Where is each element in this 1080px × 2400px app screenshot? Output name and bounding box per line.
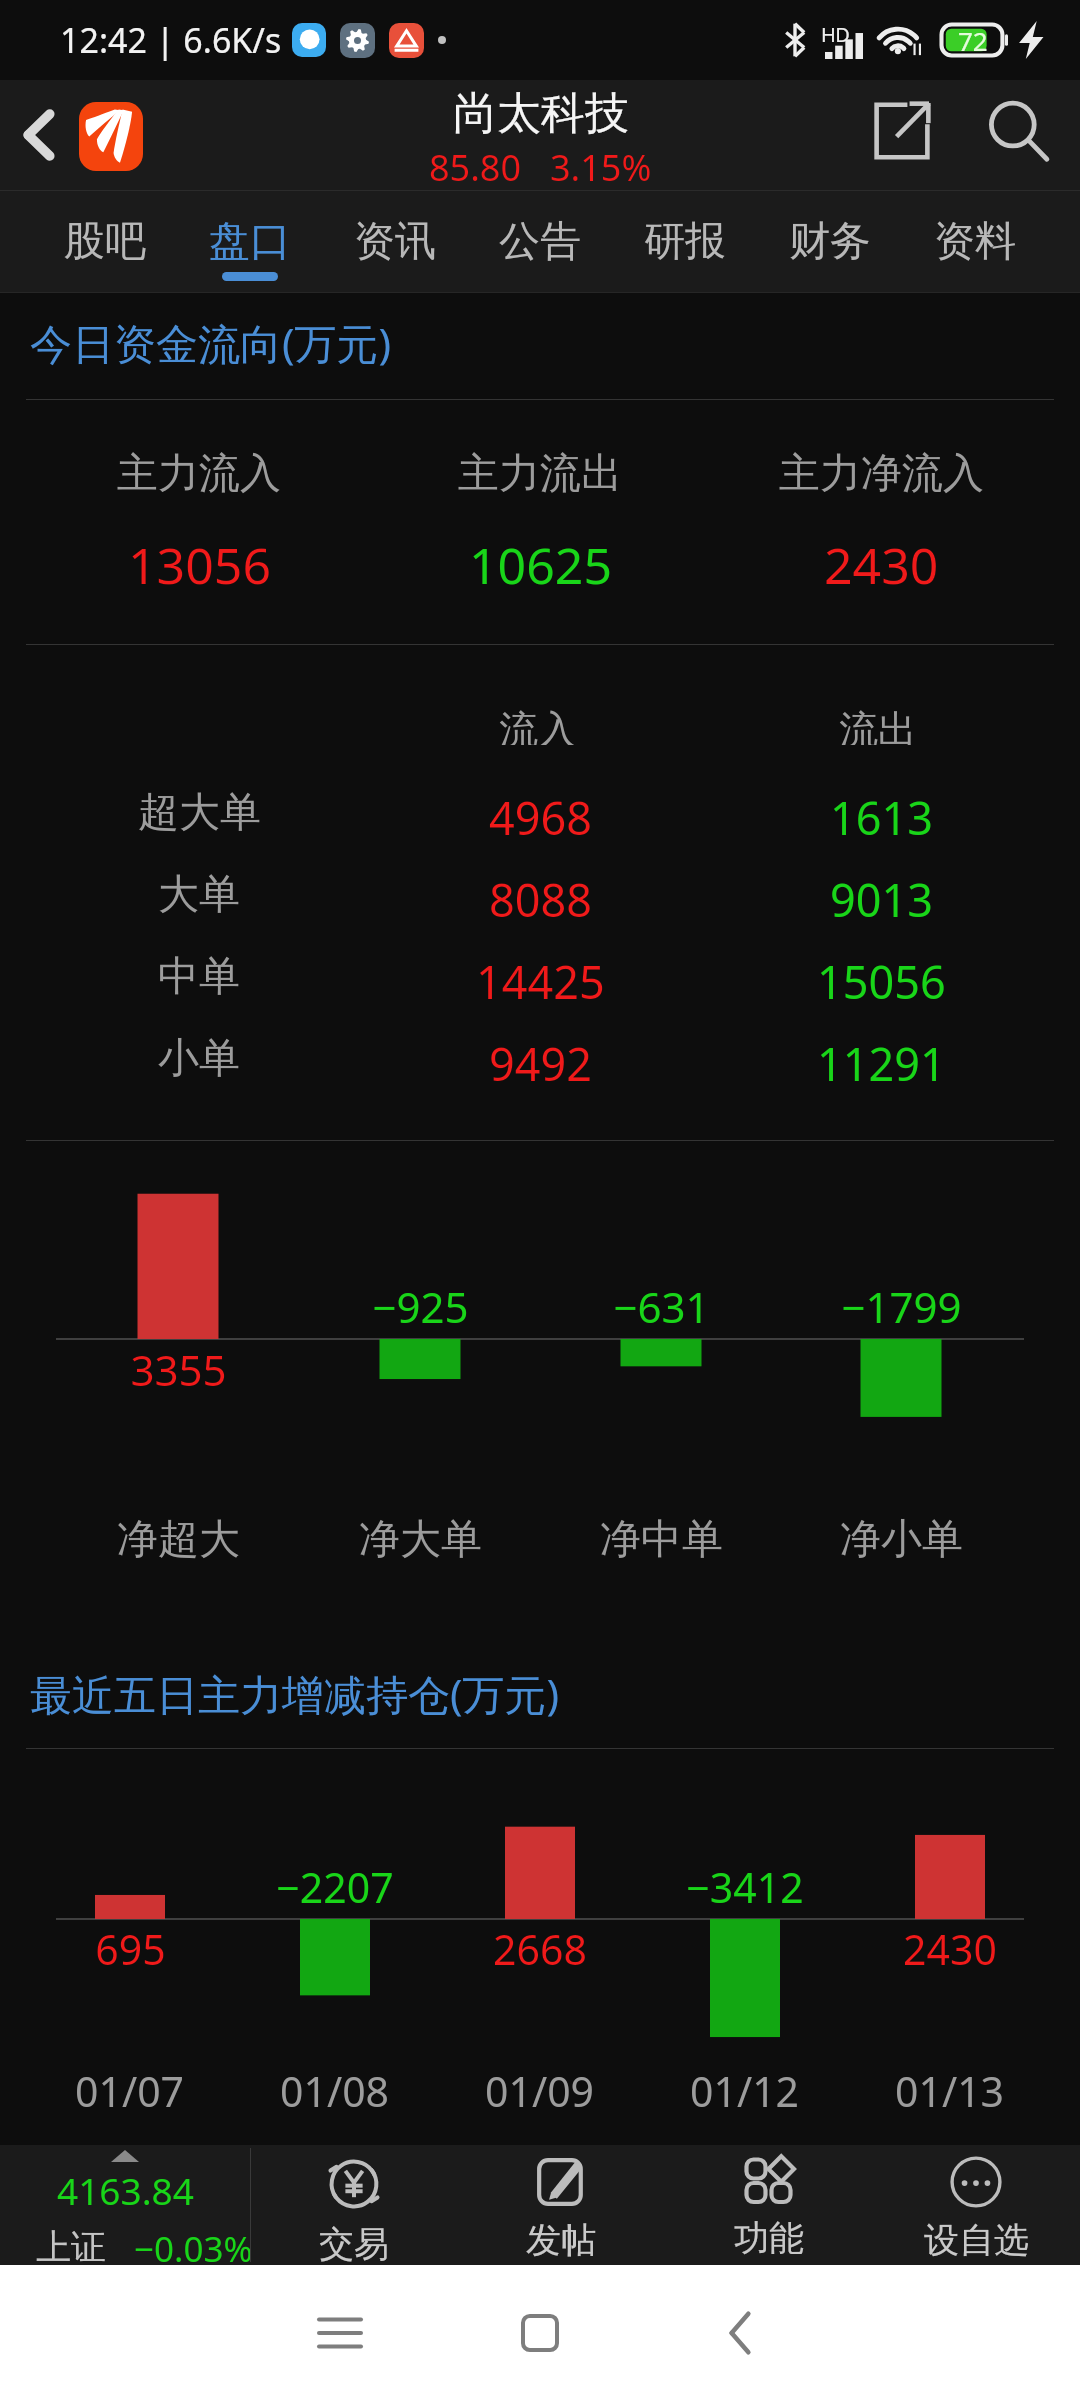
staticText: 盘口 (209, 216, 291, 268)
button[interactable]: 财务 (757, 190, 902, 293)
staticText: 10625 (469, 531, 612, 599)
button[interactable]: App home (79, 102, 143, 171)
staticText: 01/09 (485, 2063, 595, 2119)
staticText: 上证 (36, 2225, 106, 2265)
staticText: 9492 (489, 1033, 592, 1094)
staticText: 01/13 (895, 2063, 1005, 2119)
staticText: 财务 (789, 216, 871, 268)
button[interactable]: 发帖 (461, 2145, 661, 2265)
staticText: 研报 (644, 216, 726, 268)
button[interactable]: 盘口 (177, 190, 322, 293)
staticText: 小单 (158, 1033, 240, 1085)
staticText: 3.15% (550, 143, 652, 192)
staticText: 14425 (476, 951, 605, 1012)
staticText: 资讯 (354, 216, 436, 268)
staticText: 尚太科技 (453, 86, 629, 141)
staticText: 主力流出 (458, 448, 622, 500)
staticText: 01/08 (280, 2063, 390, 2119)
staticText: 流出 (839, 705, 917, 745)
staticText: HD (821, 21, 850, 48)
button[interactable]: Share (856, 85, 948, 177)
staticText: 4968 (489, 787, 592, 848)
staticText: 8088 (489, 869, 592, 930)
button[interactable]: Search (973, 86, 1065, 178)
staticText: 15056 (817, 951, 946, 1012)
button[interactable]: Back (640, 2265, 840, 2400)
button[interactable]: Recent apps (240, 2265, 440, 2400)
button[interactable]: 交易 (254, 2145, 454, 2265)
staticText: 最近五日主力增减持仓(万元) (30, 1665, 560, 1722)
staticText: 中单 (158, 951, 240, 1003)
staticText: 今日资金流向(万元) (30, 314, 392, 371)
staticText: 发帖 (526, 2218, 596, 2262)
staticText: 功能 (734, 2216, 804, 2260)
staticText: 13056 (128, 531, 271, 599)
staticText: 2668 (493, 1921, 587, 1977)
staticText: −0.03% (134, 2225, 253, 2265)
staticText: 大单 (158, 869, 240, 921)
staticText: −631 (613, 1278, 710, 1335)
staticText: 3355 (130, 1341, 227, 1398)
staticText: 公告 (499, 216, 581, 268)
button[interactable]: 股吧 (33, 190, 177, 293)
button[interactable]: 资讯 (322, 190, 467, 293)
staticText: 资料 (934, 216, 1016, 268)
staticText: −2207 (276, 1859, 394, 1915)
staticText: −3412 (686, 1859, 804, 1915)
button[interactable]: 公告 (467, 190, 612, 293)
staticText: 超大单 (138, 787, 261, 839)
staticText: 12:42 | 6.6K/s (60, 17, 282, 63)
button[interactable]: 功能 (669, 2145, 869, 2265)
staticText: 2430 (824, 531, 939, 599)
staticText: 主力流入 (117, 448, 281, 500)
button[interactable]: Back (0, 80, 78, 190)
staticText: 1613 (830, 787, 933, 848)
staticText: 11291 (817, 1033, 946, 1094)
button[interactable]: Home (440, 2265, 640, 2400)
staticText: 主力净流入 (779, 448, 984, 500)
staticText: 9013 (830, 869, 933, 930)
staticText: −925 (372, 1278, 469, 1335)
button[interactable]: 资料 (902, 190, 1047, 293)
staticText: 01/07 (75, 2063, 185, 2119)
staticText: 净大单 (359, 1514, 482, 1566)
staticText: 净超大 (117, 1514, 240, 1566)
staticText: 695 (95, 1921, 166, 1977)
staticText: 设自选 (924, 2218, 1029, 2262)
staticText: 4163.84 (57, 2165, 194, 2215)
button[interactable]: 研报 (612, 190, 757, 293)
staticText: 交易 (319, 2222, 389, 2265)
staticText: 85.80 (429, 143, 522, 192)
staticText: 2430 (903, 1921, 997, 1977)
staticText: 72 (958, 23, 988, 57)
button[interactable]: 4163.84 (0, 2145, 250, 2265)
staticText: 流入 (499, 705, 577, 745)
staticText: −1799 (841, 1278, 962, 1335)
staticText: 股吧 (64, 216, 146, 268)
staticText: 净小单 (840, 1514, 963, 1566)
button[interactable]: 设自选 (876, 2145, 1076, 2265)
staticText: 净中单 (600, 1514, 723, 1566)
staticText: 01/12 (690, 2063, 800, 2119)
